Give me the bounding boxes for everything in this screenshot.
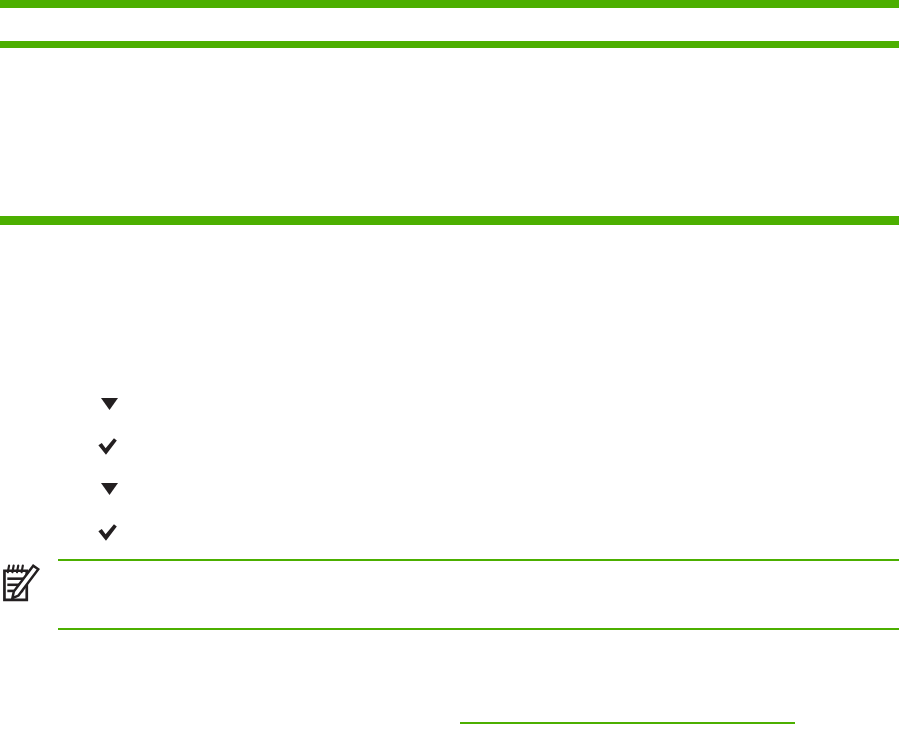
button[interactable]: Check bullet — [98, 438, 117, 455]
button[interactable]: List bullet — [101, 398, 118, 410]
button[interactable]: Note — [3, 565, 39, 601]
button[interactable]: Check bullet — [98, 524, 117, 541]
button[interactable]: List bullet — [101, 483, 118, 495]
